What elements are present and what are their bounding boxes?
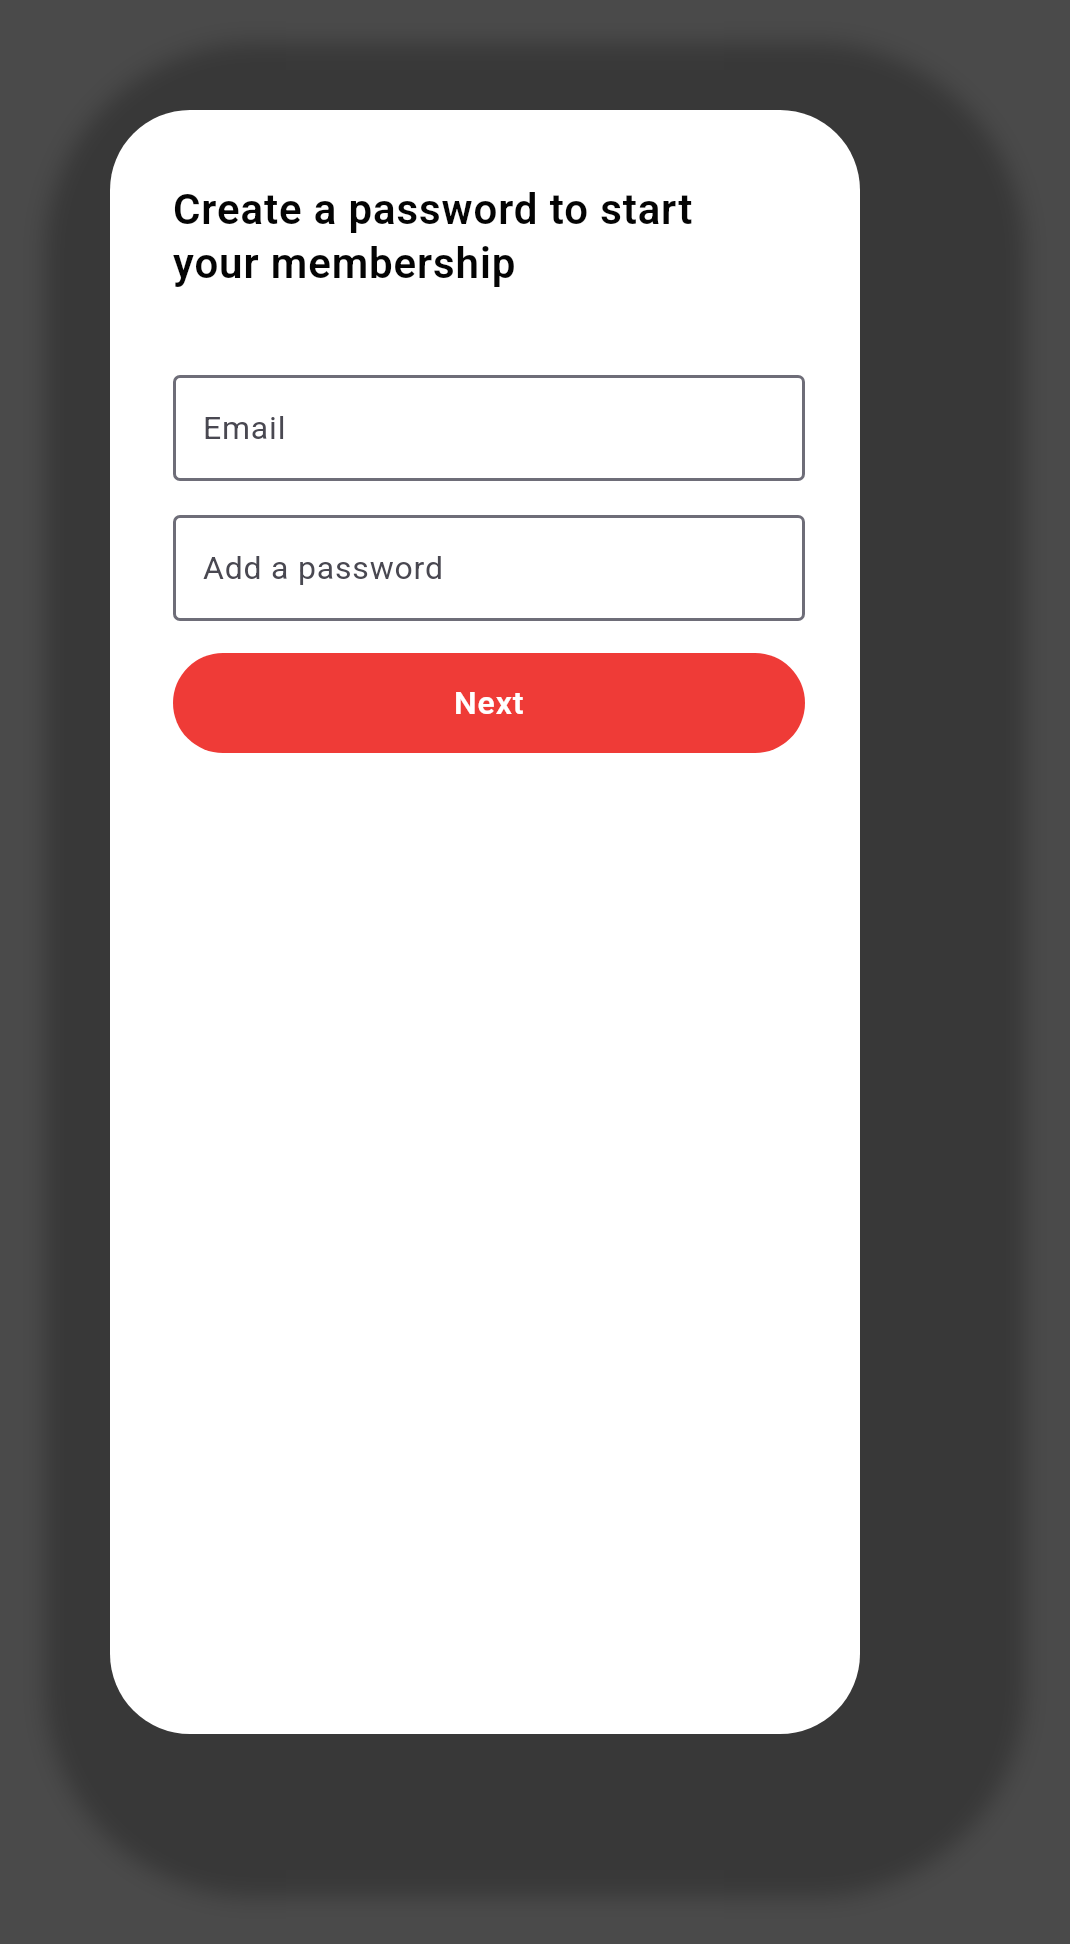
button[interactable]: Next bbox=[173, 653, 805, 753]
staticText: Create a password to start your membersh… bbox=[173, 181, 805, 289]
staticText: Add a password bbox=[203, 549, 444, 587]
staticText: Email bbox=[203, 409, 287, 447]
button[interactable]: Email bbox=[173, 375, 805, 481]
button[interactable]: Add a password bbox=[173, 515, 805, 621]
staticText: Next bbox=[454, 684, 525, 722]
